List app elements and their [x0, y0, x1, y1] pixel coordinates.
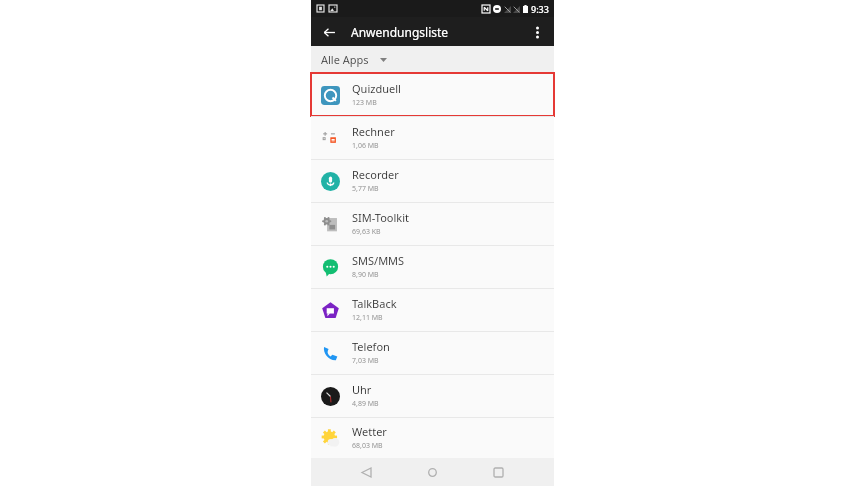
staticText: 1,06 MB: [352, 141, 379, 151]
staticText: Wetter: [352, 424, 387, 439]
staticText: 68,03 MB: [352, 441, 383, 451]
button[interactable]: Home: [420, 460, 444, 484]
button[interactable]: Rechner: [311, 116, 554, 159]
button[interactable]: Recent apps: [486, 460, 510, 484]
staticText: 9:33: [531, 3, 549, 15]
button[interactable]: More options: [526, 21, 548, 43]
staticText: Alle Apps: [321, 52, 369, 67]
button[interactable]: Alle Apps: [311, 46, 554, 73]
staticText: 12,11 MB: [352, 313, 383, 323]
staticText: Uhr: [352, 382, 372, 397]
button[interactable]: Back: [354, 460, 378, 484]
staticText: 8,90 MB: [352, 270, 379, 280]
staticText: SIM-Toolkit: [352, 210, 410, 225]
staticText: 4,89 MB: [352, 399, 379, 409]
staticText: SMS/MMS: [352, 253, 405, 268]
staticText: TalkBack: [352, 296, 397, 311]
button[interactable]: Telefon: [311, 331, 554, 374]
button[interactable]: Quizduell: [311, 73, 554, 116]
staticText: Recorder: [352, 167, 399, 182]
staticText: 7,03 MB: [352, 356, 379, 366]
staticText: Quizduell: [352, 81, 401, 96]
button[interactable]: Uhr: [311, 374, 554, 417]
staticText: 123 MB: [352, 98, 377, 108]
button[interactable]: Back: [318, 21, 340, 43]
button[interactable]: Wetter: [311, 417, 554, 458]
staticText: Anwendungsliste: [351, 24, 449, 40]
button[interactable]: Recorder: [311, 159, 554, 202]
button[interactable]: SMS/MMS: [311, 245, 554, 288]
button[interactable]: TalkBack: [311, 288, 554, 331]
staticText: 69,63 KB: [352, 227, 381, 237]
staticText: 5,77 MB: [352, 184, 379, 194]
staticText: Rechner: [352, 124, 395, 139]
button[interactable]: SIM-Toolkit: [311, 202, 554, 245]
staticText: Telefon: [352, 339, 390, 354]
